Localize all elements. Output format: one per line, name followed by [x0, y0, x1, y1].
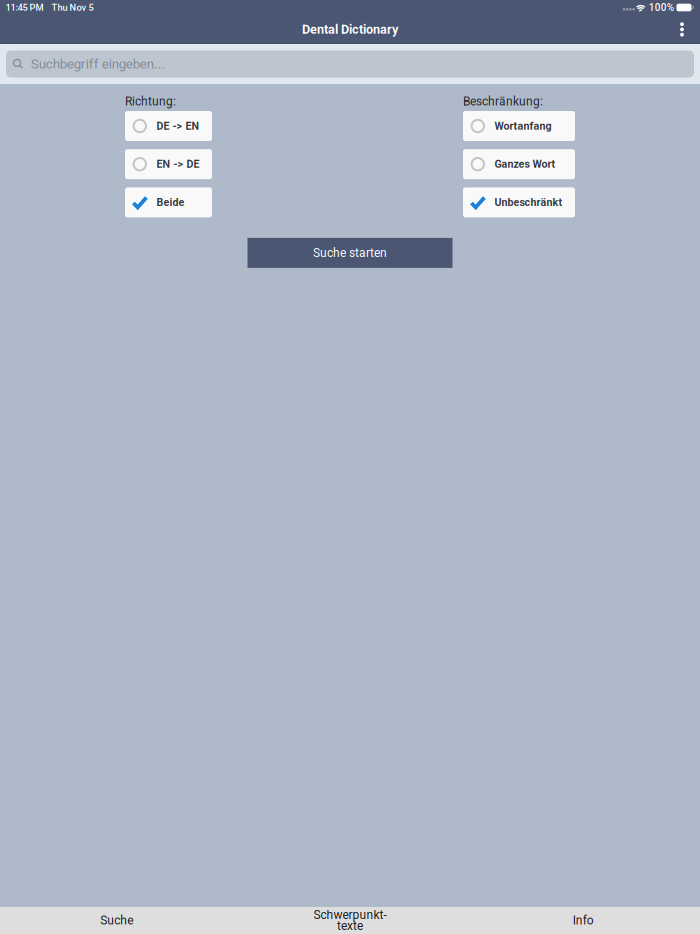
button[interactable]: Info: [467, 907, 700, 934]
staticText: Suche starten: [313, 246, 387, 260]
staticText: texte: [337, 919, 363, 933]
staticText: Schwerpunkt-: [313, 908, 386, 922]
button[interactable]: Suchbegriff eingeben...: [6, 50, 694, 77]
staticText: Richtung:: [125, 94, 176, 109]
button[interactable]: Schwerpunkt-: [233, 907, 467, 934]
button[interactable]: More options: [670, 15, 694, 43]
button[interactable]: DE -> EN: [125, 111, 212, 141]
button[interactable]: Ganzes Wort: [463, 149, 575, 179]
button[interactable]: Beide: [125, 187, 212, 217]
staticText: DE -> EN: [157, 120, 200, 132]
staticText: 11:45 PM: [5, 2, 43, 13]
staticText: Dental Dictionary: [302, 22, 398, 37]
staticText: Suchbegriff eingeben...: [31, 56, 166, 72]
button[interactable]: Unbeschränkt: [463, 187, 575, 217]
staticText: Info: [573, 913, 594, 928]
button[interactable]: Wortanfang: [463, 111, 575, 141]
staticText: Beschränkung:: [463, 94, 543, 109]
staticText: Suche: [100, 913, 133, 928]
button[interactable]: EN -> DE: [125, 149, 212, 179]
button[interactable]: Suche: [0, 907, 233, 934]
button[interactable]: Suche starten: [247, 238, 452, 268]
staticText: Ganzes Wort: [495, 158, 556, 170]
staticText: EN -> DE: [157, 158, 200, 170]
staticText: Thu Nov 5: [51, 2, 93, 13]
staticText: Beide: [157, 196, 185, 209]
staticText: Unbeschränkt: [495, 196, 563, 209]
staticText: Wortanfang: [495, 120, 552, 132]
staticText: 100%: [649, 2, 674, 13]
